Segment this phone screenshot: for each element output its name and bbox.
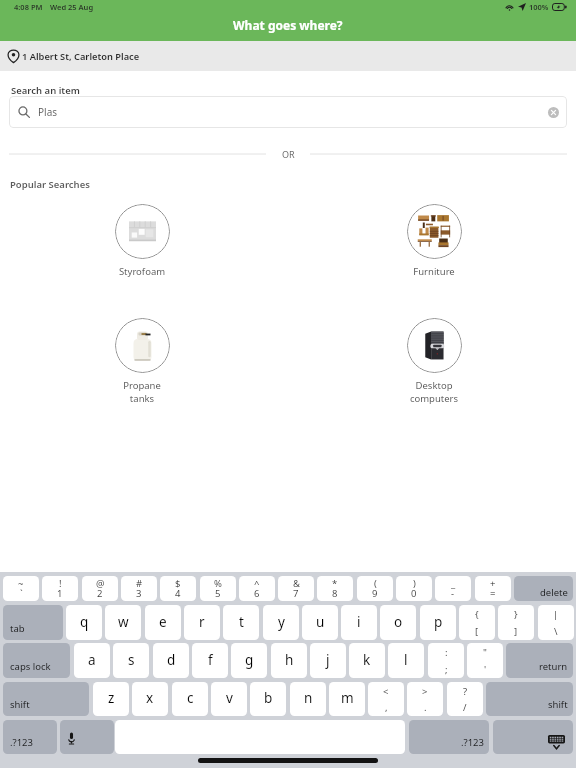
button[interactable]: caps lock [3, 643, 70, 678]
button[interactable]: _ [435, 576, 471, 601]
staticText: y [278, 613, 285, 631]
button[interactable]: + [475, 576, 511, 601]
button[interactable]: < [368, 682, 404, 716]
staticText: w [118, 613, 129, 631]
button[interactable]: z [93, 682, 129, 716]
button[interactable]: Styrofoam [77, 204, 207, 278]
button[interactable]: { [459, 605, 495, 640]
staticText: _ [451, 577, 456, 590]
staticText: > [422, 685, 428, 698]
staticText: r [199, 613, 205, 631]
button[interactable]: t [223, 605, 259, 640]
button[interactable]: } [498, 605, 534, 640]
button[interactable]: .?123 [409, 720, 489, 754]
button[interactable]: return [506, 643, 573, 678]
button[interactable]: w [105, 605, 141, 640]
staticText: shift [10, 698, 30, 711]
button[interactable]: s [113, 643, 149, 678]
button[interactable]: i [341, 605, 377, 640]
staticText: - [451, 587, 455, 600]
staticText: 1 [57, 587, 63, 600]
staticText: ! [59, 577, 62, 590]
button[interactable]: c [172, 682, 208, 716]
staticText: j [326, 651, 330, 669]
button[interactable]: l [388, 643, 424, 678]
staticText: k [363, 651, 371, 669]
button[interactable]: Hide keyboard [493, 720, 573, 754]
button[interactable]: Clear [548, 107, 559, 118]
button[interactable]: g [231, 643, 267, 678]
button[interactable]: b [250, 682, 286, 716]
button[interactable]: k [349, 643, 385, 678]
staticText: < [383, 685, 389, 698]
button[interactable]: h [271, 643, 307, 678]
button[interactable]: p [420, 605, 456, 640]
button[interactable]: Desktop computers [369, 318, 499, 405]
button[interactable]: q [66, 605, 102, 640]
button[interactable]: % [200, 576, 236, 601]
staticText: = [490, 587, 496, 600]
button[interactable]: Furniture [369, 204, 499, 278]
button[interactable]: n [290, 682, 326, 716]
staticText: What goes where? [233, 17, 343, 33]
button[interactable]: > [407, 682, 443, 716]
button[interactable]: .?123 [3, 720, 57, 754]
button[interactable]: f [192, 643, 228, 678]
button[interactable]: shift [3, 682, 89, 716]
button[interactable]: ^ [239, 576, 275, 601]
button[interactable]: e [145, 605, 181, 640]
button[interactable]: y [263, 605, 299, 640]
staticText: p [434, 613, 443, 631]
button[interactable]: o [380, 605, 416, 640]
staticText: ( [374, 577, 377, 590]
staticText: 100% [529, 2, 549, 12]
button[interactable]: tab [3, 605, 63, 640]
button[interactable]: & [278, 576, 314, 601]
staticText: ' [484, 663, 487, 676]
button[interactable]: shift [486, 682, 573, 716]
button[interactable]: v [211, 682, 247, 716]
button[interactable]: r [184, 605, 220, 640]
button[interactable]: j [310, 643, 346, 678]
staticText: % [214, 577, 222, 590]
button[interactable]: a [74, 643, 110, 678]
button[interactable]: " [467, 643, 503, 678]
button[interactable]: u [302, 605, 338, 640]
button[interactable]: Dictation [60, 720, 114, 754]
staticText: 8 [332, 587, 338, 600]
button[interactable]: ! [42, 576, 78, 601]
staticText: { [475, 608, 479, 621]
staticText: " [483, 646, 487, 659]
button[interactable]: ( [357, 576, 393, 601]
staticText: i [357, 613, 361, 631]
staticText: 7 [293, 587, 299, 600]
button[interactable]: Propane tanks [77, 318, 207, 405]
button[interactable]: # [121, 576, 157, 601]
staticText: return [539, 660, 568, 673]
staticText: c [187, 689, 194, 707]
button[interactable]: d [153, 643, 189, 678]
button[interactable]: ? [447, 682, 483, 716]
button[interactable]: @ [82, 576, 118, 601]
button[interactable]: x [132, 682, 168, 716]
button[interactable]: delete [514, 576, 573, 601]
button[interactable]: * [317, 576, 353, 601]
button[interactable]: : [428, 643, 464, 678]
staticText: / [463, 701, 467, 714]
button[interactable]: ) [396, 576, 432, 601]
staticText: .?123 [461, 736, 484, 749]
button[interactable]: m [329, 682, 365, 716]
staticText: l [404, 651, 408, 669]
staticText: . [424, 701, 427, 714]
staticText: , [385, 701, 388, 714]
button[interactable]: $ [160, 576, 196, 601]
button[interactable]: Plas [9, 96, 567, 128]
staticText: } [514, 608, 518, 621]
staticText: g [245, 651, 254, 669]
button[interactable]: ~ [3, 576, 39, 601]
staticText: 6 [254, 587, 260, 600]
staticText: Furniture [369, 265, 499, 278]
staticText: ) [413, 577, 416, 590]
button[interactable]: | [538, 605, 574, 640]
